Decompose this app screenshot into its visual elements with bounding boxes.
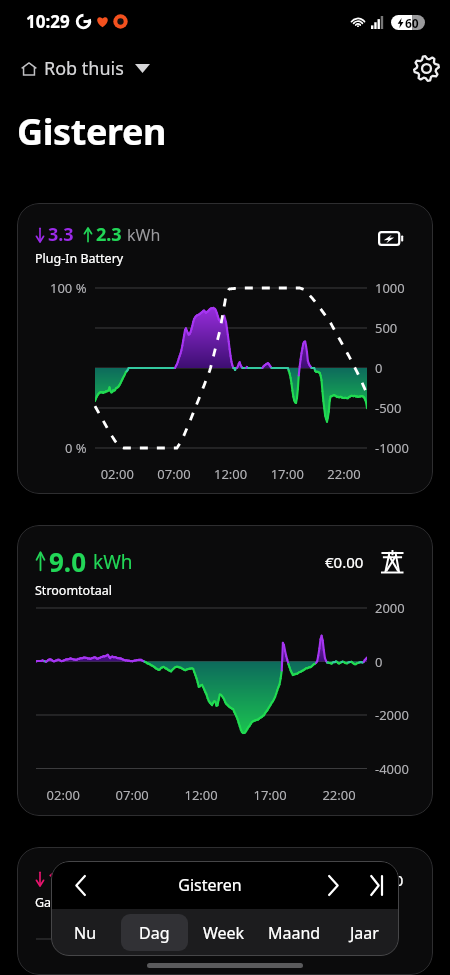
staticText: 3.3 [48,222,74,247]
button[interactable]: 9.0 [17,525,433,816]
staticText: Week [203,922,245,944]
staticText: Rob thuis [44,56,124,81]
button[interactable]: Next [311,861,355,909]
staticText: €1.70 [365,870,404,890]
staticText: kWh [127,224,161,246]
button[interactable]: Latest [355,861,399,909]
staticText: Jaar [350,922,379,944]
staticText: 2.3 [96,222,122,247]
button[interactable]: Dag [121,914,188,951]
button[interactable]: Week [190,914,258,951]
staticText: m³ [79,866,103,891]
staticText: kWh [93,549,133,575]
staticText: Stroomtotaal [35,582,112,599]
staticText: 60 [405,15,419,30]
button[interactable]: Settings [406,48,446,88]
staticText: 9.0 [49,544,87,579]
button[interactable]: Rob thuis [17,50,154,87]
button[interactable]: 1.4 [17,847,433,975]
staticText: Gisteren [17,107,167,156]
staticText: Gas [35,894,58,911]
staticText: Plug-In Battery [35,250,124,267]
staticText: Maand [268,922,321,944]
button[interactable]: Nu [52,914,119,951]
staticText: 1.4 [48,866,74,891]
button[interactable]: Previous [51,861,109,909]
button[interactable]: Maand [260,914,328,951]
staticText: €0.00 [325,552,364,572]
staticText: Nu [74,922,97,944]
staticText: Dag [139,922,170,944]
staticText: 10:29 [26,10,70,33]
staticText: Gisteren [109,874,311,896]
button[interactable]: 3.3 [17,203,433,494]
button[interactable]: Jaar [330,914,398,951]
